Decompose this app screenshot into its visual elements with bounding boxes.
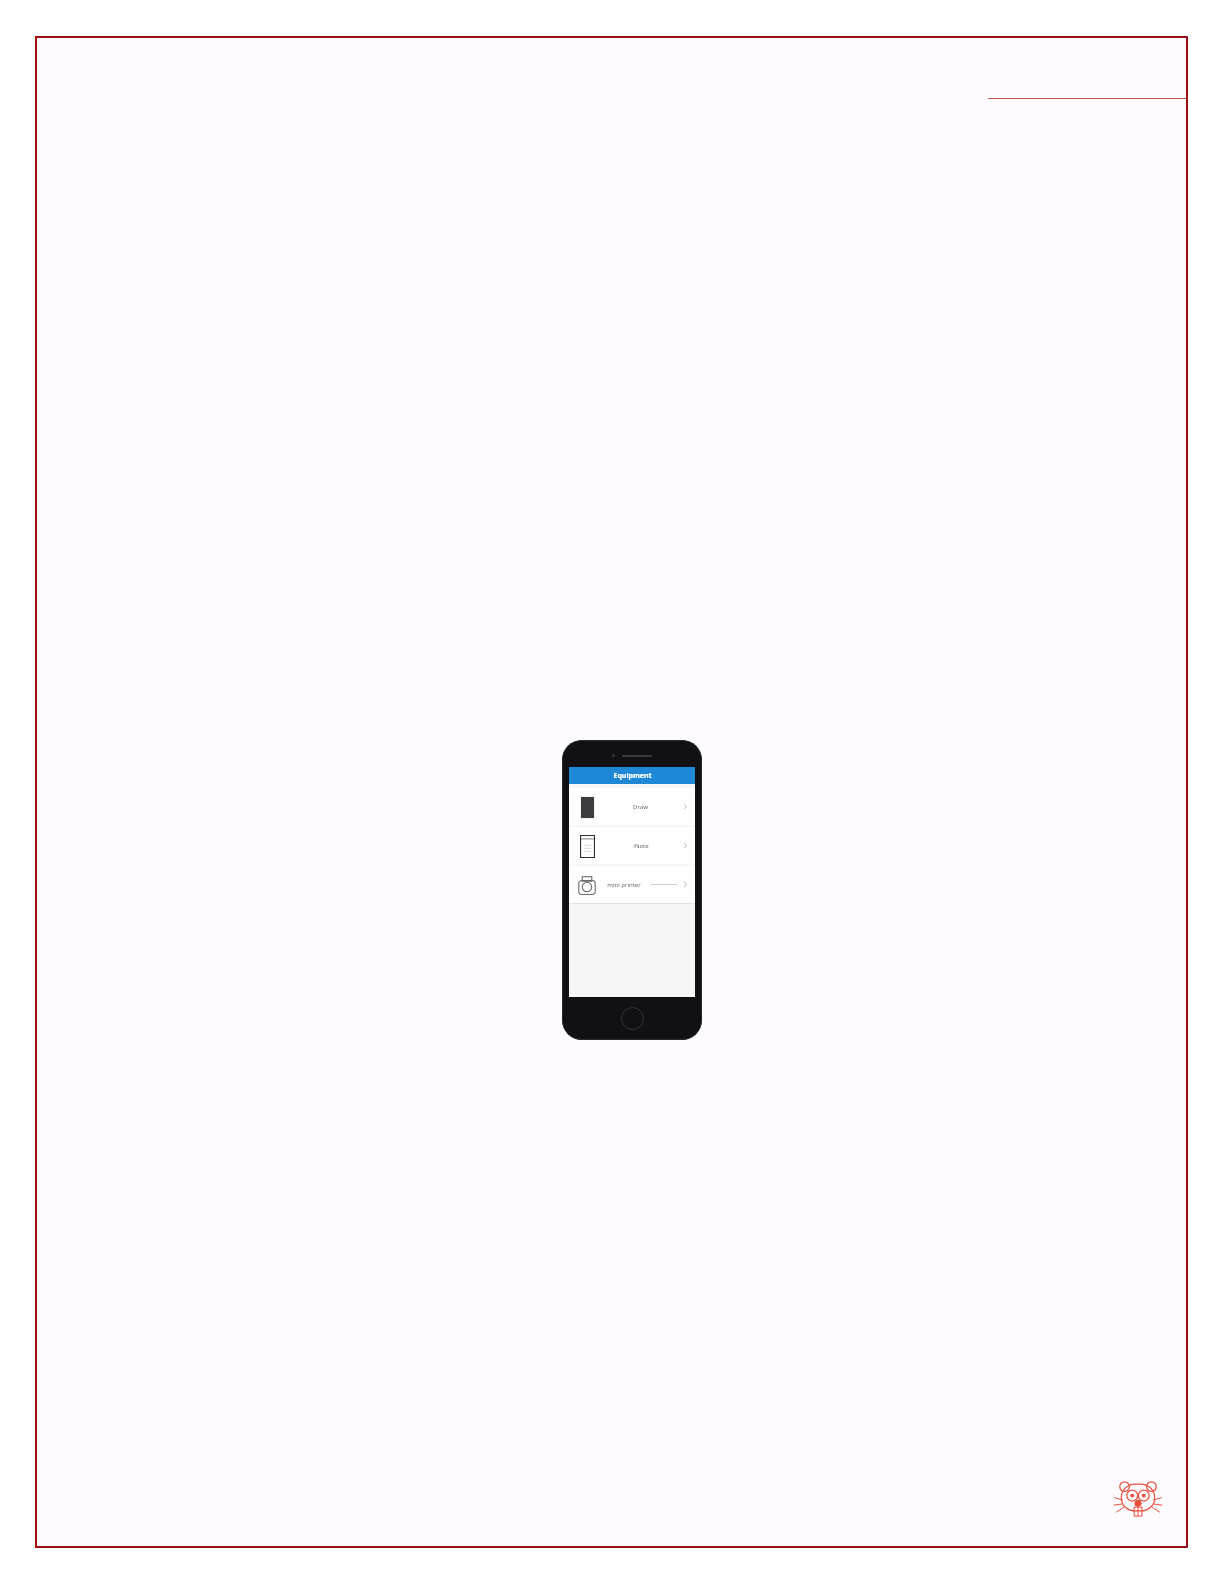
staticText: iNote <box>633 842 649 850</box>
button[interactable]: mini printer <box>569 866 695 903</box>
other: Home <box>621 1007 644 1030</box>
staticText: Draw <box>633 803 648 811</box>
staticText: Equipment <box>613 771 652 781</box>
button[interactable]: iNote <box>569 827 695 864</box>
button[interactable]: Draw <box>569 788 695 825</box>
staticText: mini printer <box>607 881 641 889</box>
